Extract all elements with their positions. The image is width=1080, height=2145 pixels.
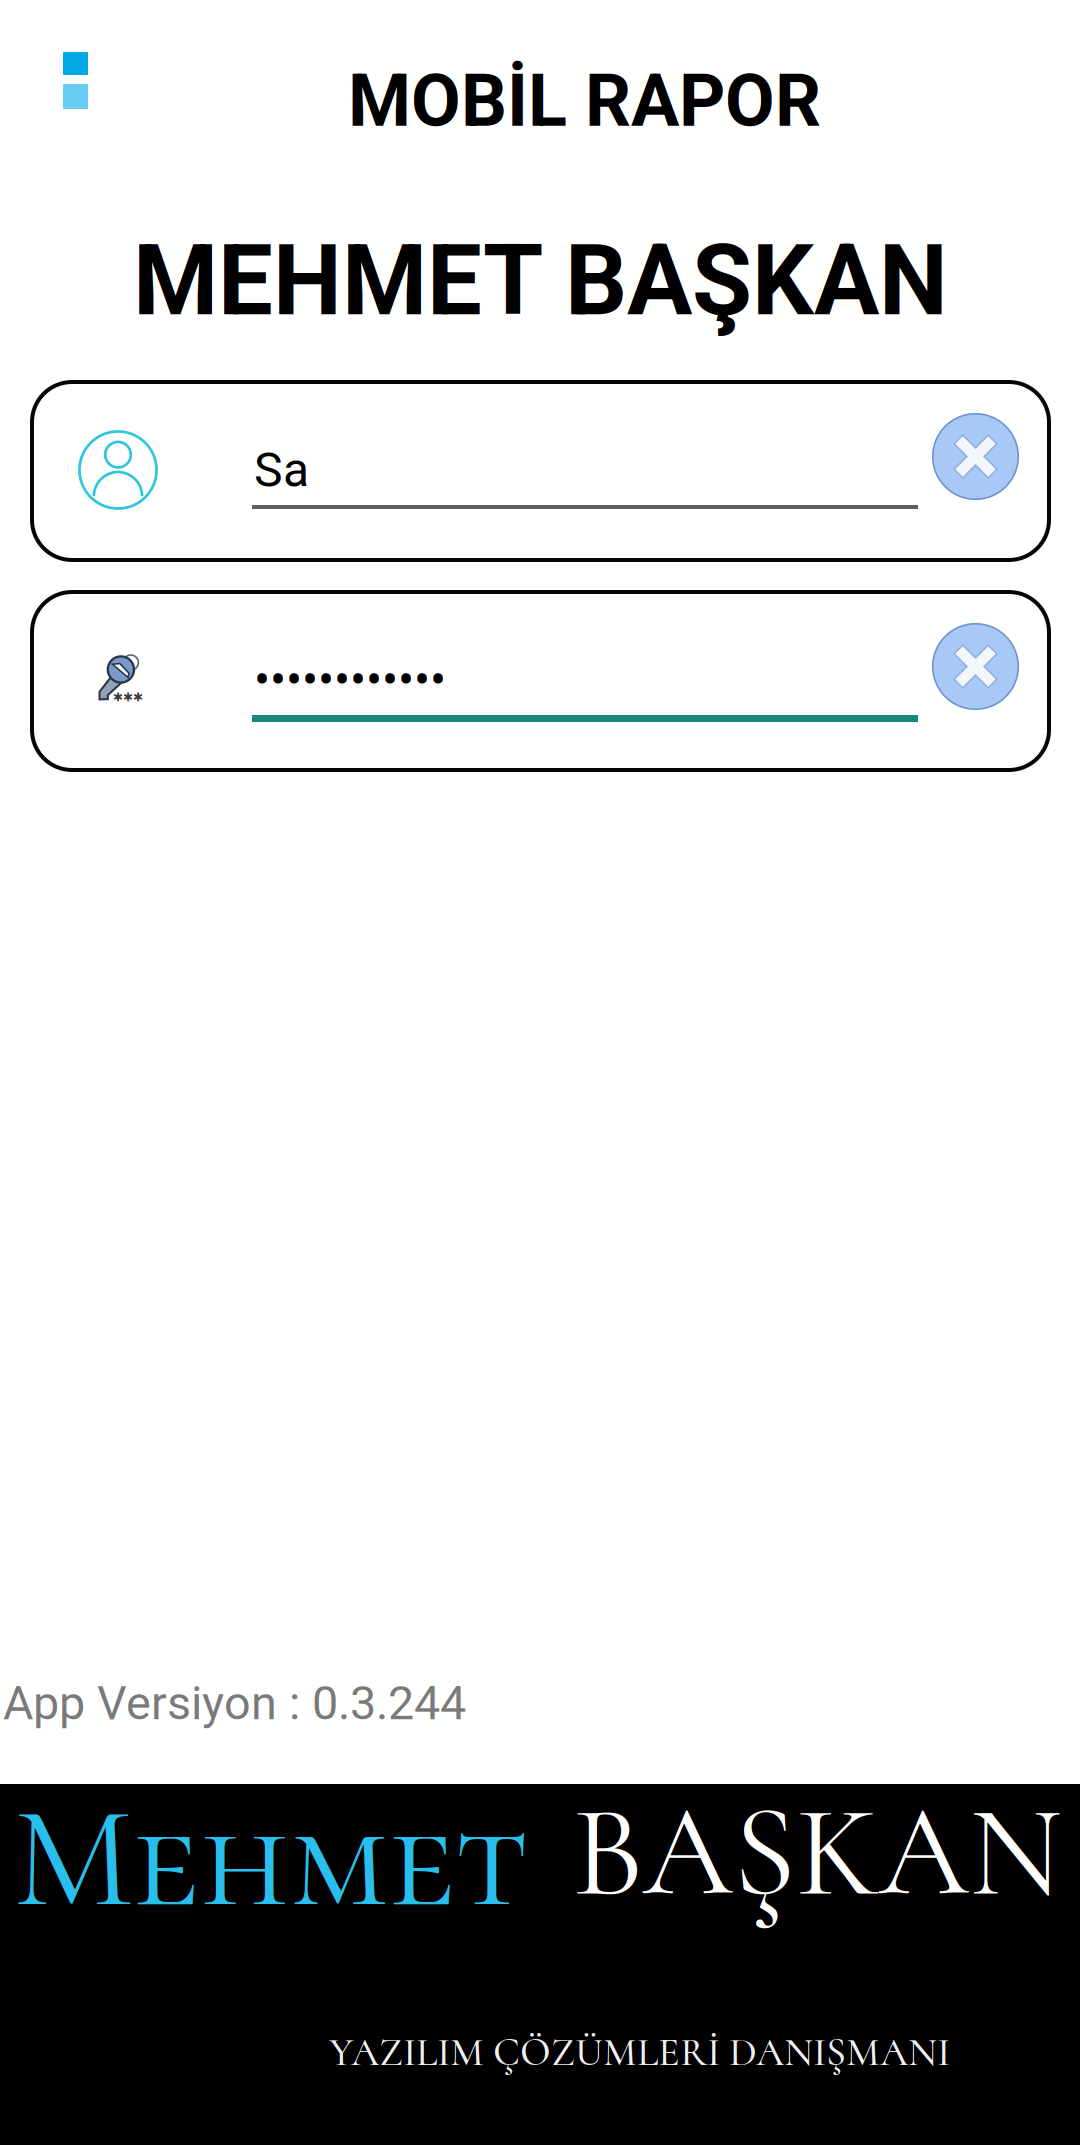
staticText: YAZILIM ÇÖZÜMLERİ DANIŞMANI <box>329 2028 950 2076</box>
staticText: MEHMET BAŞKAN <box>133 224 948 338</box>
staticText: Sa <box>254 442 309 498</box>
staticText: Mehmet <box>13 1771 527 1945</box>
staticText: •••••••••••• <box>254 652 446 708</box>
button[interactable]: Temizle <box>930 621 1021 712</box>
button[interactable]: ✱✱✱ <box>32 592 1049 770</box>
staticText: App Versiyon : 0.3.244 <box>3 1676 466 1731</box>
button[interactable]: Sa <box>32 382 1049 560</box>
staticText: ✱✱✱ <box>113 690 143 704</box>
button[interactable]: Temizle <box>930 411 1021 502</box>
staticText: BAŞKAN <box>572 1775 1062 1930</box>
staticText: MOBİL RAPOR <box>348 59 821 143</box>
